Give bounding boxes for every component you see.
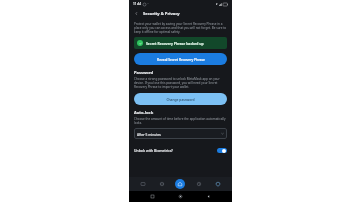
button[interactable]: Change password: [134, 93, 227, 105]
button[interactable]: Activity: [194, 179, 204, 189]
staticText: Choose a strong password to unlock MetaM…: [134, 77, 227, 89]
staticText: ▾: [216, 3, 218, 6]
staticText: After 5 minutes: [137, 132, 161, 136]
button[interactable]: Wallet: [138, 179, 148, 189]
button[interactable]: Browser: [157, 179, 167, 189]
button[interactable]: Reveal Secret Recovery Phrase: [134, 53, 227, 65]
button[interactable]: Home: [175, 179, 185, 189]
staticText: 11:44: [133, 2, 142, 6]
button[interactable]: Back: [204, 192, 213, 201]
button[interactable]: Secret Recovery Phrase backed up: [134, 37, 227, 49]
staticText: Password: [134, 70, 154, 75]
button[interactable]: Home: [176, 192, 185, 201]
staticText: Reveal Secret Recovery Phrase: [157, 57, 205, 61]
staticText: Auto-lock: [134, 110, 154, 115]
button[interactable]: Back: [133, 10, 140, 17]
button[interactable]: Unlock with Biometrics?: [134, 145, 227, 155]
button[interactable]: Settings: [213, 179, 223, 189]
staticText: Choose the amount of time before the app…: [134, 117, 227, 125]
staticText: Change password: [166, 97, 195, 101]
staticText: Unlock with Biometrics?: [134, 148, 173, 153]
staticText: Security & Privacy: [143, 11, 180, 17]
button[interactable]: Recents: [148, 192, 157, 201]
staticText: Protect your wallet by saving your Secre…: [134, 22, 227, 34]
button[interactable]: After 5 minutes: [134, 128, 227, 139]
staticText: ··: [147, 2, 149, 6]
staticText: Secret Recovery Phrase backed up: [146, 41, 204, 46]
